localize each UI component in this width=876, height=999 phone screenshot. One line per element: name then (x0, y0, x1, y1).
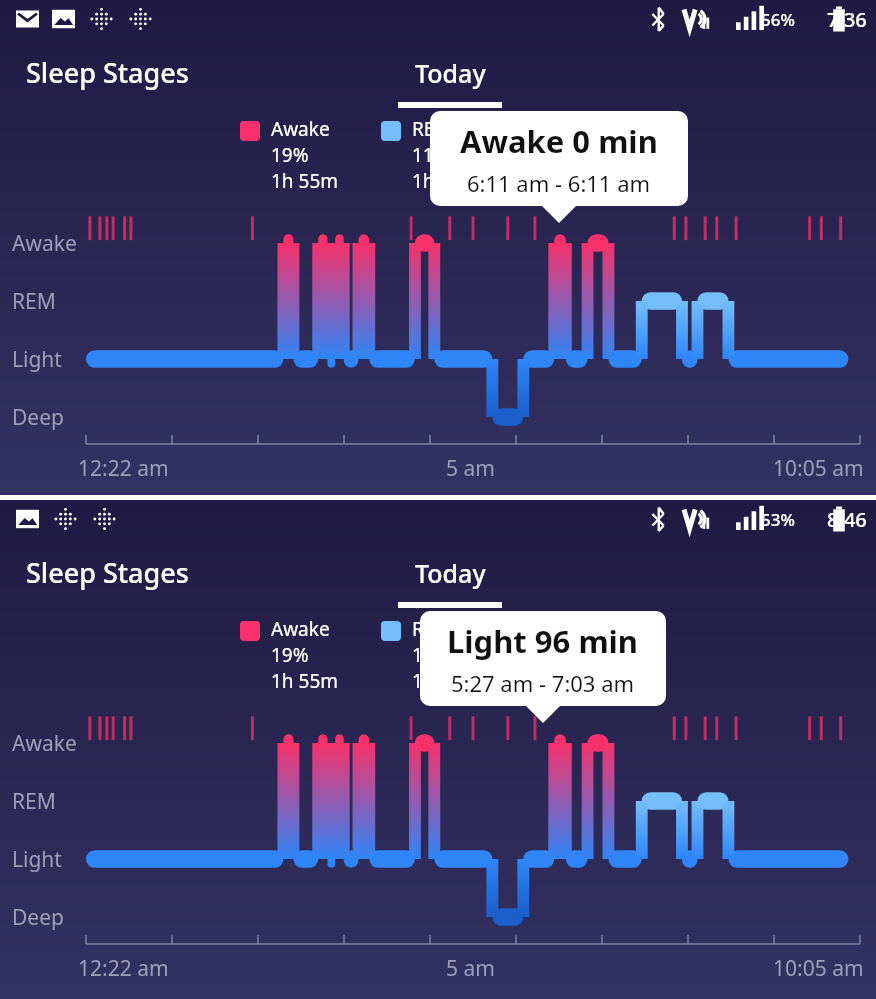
button[interactable]: Today (398, 56, 502, 108)
staticText: 53% (761, 508, 795, 531)
staticText: REM (412, 116, 452, 142)
staticText: Awake (271, 116, 330, 142)
staticText: Light 96 min (447, 620, 639, 662)
staticText: 7:36 (827, 6, 867, 33)
button[interactable]: Awake (240, 616, 339, 694)
staticText: REM (412, 616, 452, 642)
button[interactable]: Sleep Stages (26, 54, 189, 91)
staticText: 5:27 am - 7:03 am (451, 668, 635, 698)
staticText: 8:46 (827, 506, 867, 533)
staticText: REM (12, 787, 56, 816)
staticText: Awake 0 min (460, 120, 658, 162)
staticText: 5 am (446, 954, 495, 983)
staticText: Today (415, 56, 486, 90)
staticText: Awake (12, 229, 77, 258)
staticText: 1h 55m (271, 168, 339, 194)
staticText: 10:05 am (773, 954, 864, 983)
button[interactable]: Light 96 min (420, 611, 666, 706)
staticText: Light (12, 845, 62, 874)
staticText: Light (12, 345, 62, 374)
button[interactable]: Awake 0 min (430, 111, 688, 206)
staticText: 12:22 am (78, 454, 169, 483)
staticText: 56% (761, 8, 795, 31)
staticText: 5 am (446, 454, 495, 483)
button[interactable]: REM (381, 116, 469, 194)
staticText: 19% (271, 142, 309, 168)
staticText: Deep (12, 903, 64, 932)
staticText: Awake (271, 616, 330, 642)
staticText: 1h 55m (271, 668, 339, 694)
staticText: Deep (12, 403, 64, 432)
staticText: 12:22 am (78, 954, 169, 983)
button[interactable]: Today (398, 556, 502, 608)
staticText: 10:05 am (773, 454, 864, 483)
staticText: 6:11 am - 6:11 am (467, 168, 651, 198)
staticText: REM (12, 287, 56, 316)
button[interactable]: REM (381, 616, 469, 694)
staticText: 1h 5m (412, 668, 469, 694)
staticText: 19% (271, 642, 309, 668)
staticText: 11% (412, 642, 450, 668)
button[interactable]: Awake (240, 116, 339, 194)
staticText: Today (415, 556, 486, 590)
button[interactable]: Sleep Stages (26, 554, 189, 591)
staticText: 11% (412, 142, 450, 168)
staticText: Awake (12, 729, 77, 758)
staticText: 1h 5m (412, 168, 469, 194)
